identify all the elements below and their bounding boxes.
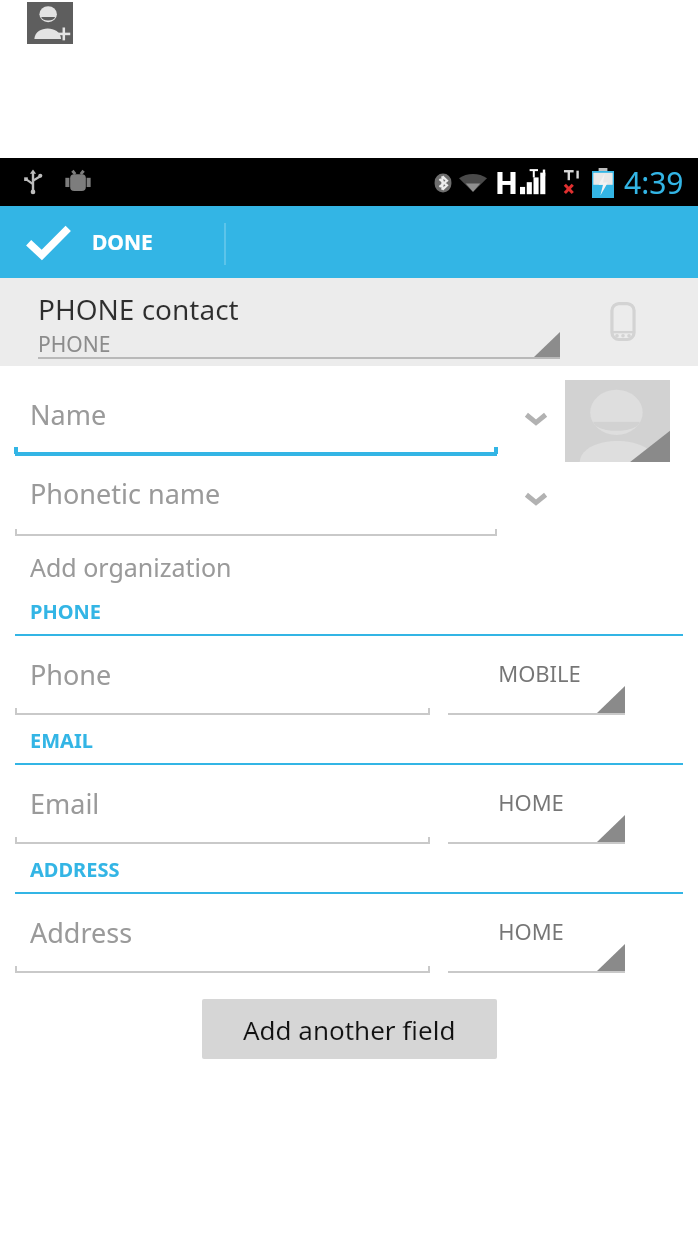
button[interactable]: Phone [0,636,430,721]
button[interactable]: PHONE contact [0,278,698,366]
button[interactable]: Add another field [202,999,497,1059]
other: Phone account [600,299,646,345]
button[interactable]: Add organization [0,542,698,592]
staticText: Phone [30,656,112,693]
staticText: DONE [92,228,153,257]
button[interactable]: Email [0,765,430,850]
button[interactable]: Phonetic name [0,458,510,536]
button[interactable]: HOME [448,894,698,979]
staticText: HOME [498,916,564,946]
button[interactable]: Add contact [27,2,73,44]
staticText: MOBILE [498,658,581,688]
staticText: Email [30,785,100,822]
staticText: Phonetic name [30,475,221,512]
staticText: Name [30,396,107,433]
button[interactable]: Contact photo [565,380,670,462]
button[interactable]: Address [0,894,430,979]
staticText: HOME [498,787,564,817]
button[interactable]: Expand name fields [512,404,560,434]
staticText: Add another field [243,1012,456,1047]
staticText: 4:39 [624,162,684,203]
staticText: PHONE [30,598,101,625]
staticText: EMAIL [30,727,93,754]
button[interactable]: MOBILE [448,636,698,721]
button[interactable]: DONE [0,206,698,278]
button[interactable]: HOME [448,765,698,850]
button[interactable]: Expand phonetic name fields [512,484,560,514]
staticText: PHONE contact [38,290,239,328]
staticText: Add organization [30,550,232,584]
button[interactable]: Name [0,378,510,456]
staticText: Address [30,914,133,951]
staticText: ADDRESS [30,856,120,883]
staticText: H [495,162,518,203]
staticText: PHONE [38,330,111,359]
